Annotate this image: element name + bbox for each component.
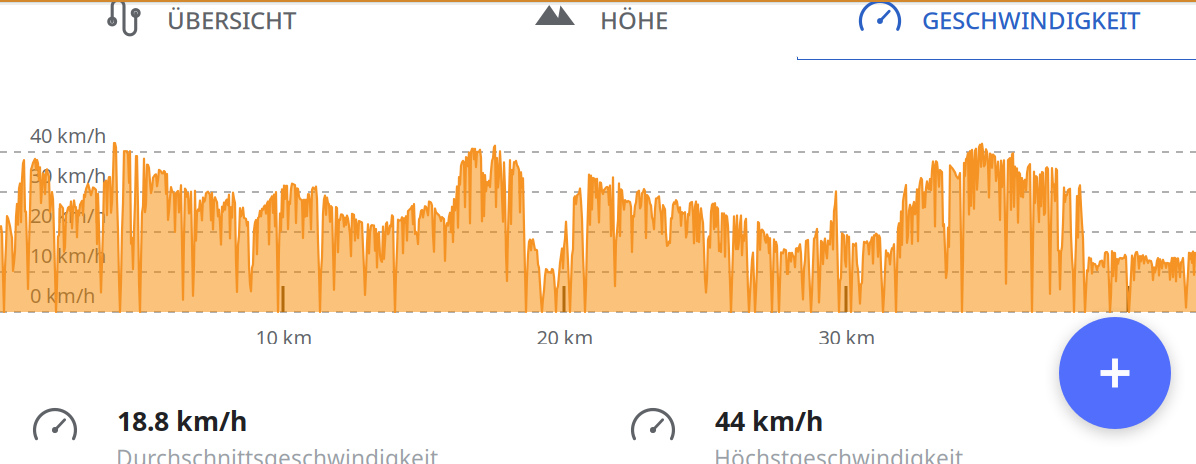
button[interactable]: ÜBERSICHT bbox=[0, 0, 398, 57]
staticText: 18.8 km/h bbox=[117, 403, 247, 438]
staticText: GESCHWINDIGKEIT bbox=[922, 4, 1140, 36]
staticText: 20 km/h bbox=[30, 202, 106, 229]
staticText: Höchstgeschwindigkeit bbox=[714, 443, 963, 464]
staticText: HÖHE bbox=[600, 4, 668, 36]
staticText: 0 km/h bbox=[30, 282, 95, 309]
button[interactable]: 44 km/h bbox=[598, 344, 1196, 464]
staticText: 40 km/h bbox=[30, 122, 106, 149]
staticText: 30 km/h bbox=[30, 162, 106, 189]
button[interactable]: GESCHWINDIGKEIT bbox=[798, 0, 1196, 57]
staticText: 10 km/h bbox=[30, 242, 106, 269]
staticText: 30 km bbox=[818, 324, 875, 351]
staticText: 44 km/h bbox=[715, 403, 823, 438]
staticText: ÜBERSICHT bbox=[167, 4, 296, 36]
staticText: 20 km bbox=[536, 324, 593, 351]
button[interactable]: Neue Aktivität bbox=[1059, 317, 1171, 429]
button[interactable]: 18.8 km/h bbox=[0, 344, 598, 464]
button[interactable]: HÖHE bbox=[398, 0, 796, 57]
staticText: 10 km bbox=[255, 324, 312, 351]
staticText: Durchschnittsgeschwindigkeit bbox=[116, 443, 438, 464]
staticText: 40 km bbox=[1100, 324, 1157, 351]
